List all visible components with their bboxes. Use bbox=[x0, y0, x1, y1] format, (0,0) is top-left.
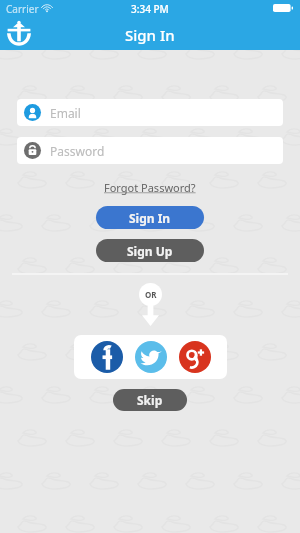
button[interactable]: Email bbox=[17, 99, 283, 126]
staticText: Sign Up bbox=[127, 243, 173, 259]
staticText: 3:34 PM bbox=[131, 2, 169, 16]
other: App logo bbox=[4, 21, 34, 47]
staticText: Carrier bbox=[6, 2, 39, 16]
button[interactable]: Password bbox=[17, 137, 283, 164]
button[interactable]: Sign in with Twitter bbox=[135, 341, 167, 373]
staticText: Sign In bbox=[125, 25, 175, 45]
button[interactable]: Skip bbox=[113, 389, 187, 411]
button[interactable]: Sign in with Google Plus bbox=[179, 341, 211, 373]
button[interactable]: Forgot Password? bbox=[98, 178, 202, 197]
staticText: OR bbox=[145, 289, 157, 300]
button[interactable]: Sign in with Facebook bbox=[91, 341, 123, 373]
staticText: Skip bbox=[137, 392, 163, 408]
staticText: Forgot Password? bbox=[104, 180, 196, 195]
button[interactable]: Sign Up bbox=[96, 239, 204, 262]
button[interactable]: Sign In bbox=[96, 206, 204, 229]
staticText: Password bbox=[50, 143, 105, 159]
staticText: Email bbox=[50, 105, 81, 121]
staticText: Sign In bbox=[129, 210, 171, 226]
